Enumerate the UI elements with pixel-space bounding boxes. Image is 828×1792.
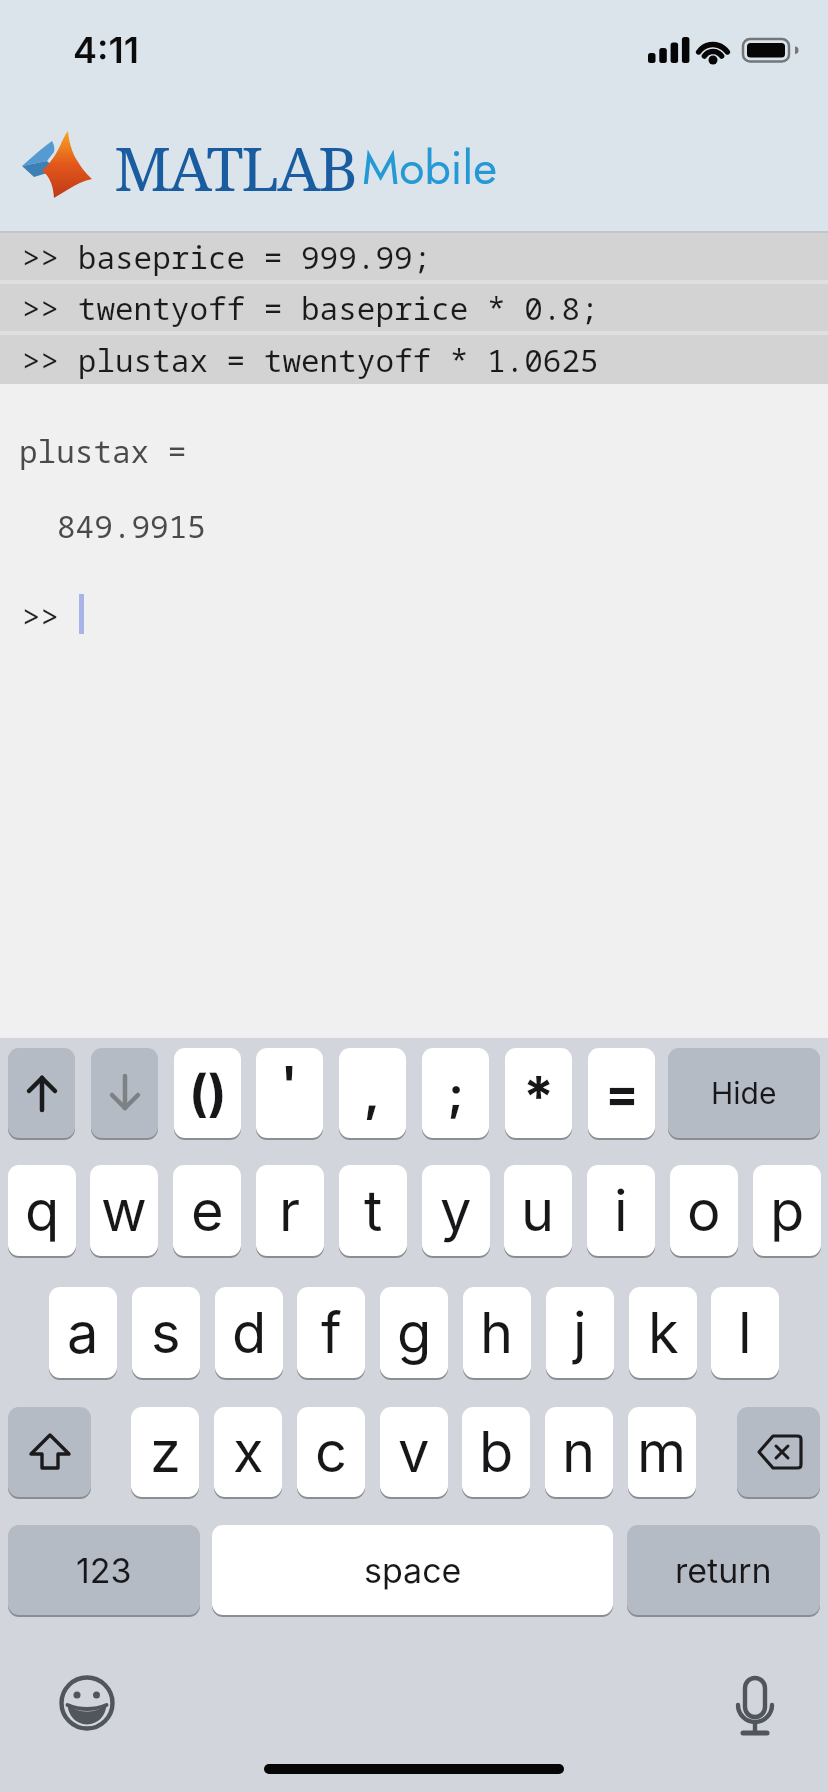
staticText: ; [448,1065,464,1121]
button[interactable]: v [380,1407,448,1497]
button[interactable]: f [297,1287,365,1378]
staticText: j [573,1299,587,1367]
button[interactable]: b [462,1407,530,1497]
staticText: n [562,1418,596,1486]
button[interactable]: Hide [668,1048,820,1138]
staticText: e [191,1177,224,1245]
staticText: g [397,1299,432,1367]
staticText: Mobile [362,135,497,201]
staticText: t [364,1177,383,1245]
button[interactable]: d [215,1287,283,1378]
staticText: k [648,1299,679,1367]
button[interactable]: w [90,1165,158,1256]
staticText: u [521,1177,555,1245]
staticText: b [479,1418,514,1486]
button[interactable]: q [8,1165,76,1256]
staticText: m [637,1418,687,1486]
staticText: s [151,1299,181,1367]
button[interactable]: i [587,1165,655,1256]
staticText: d [232,1299,267,1367]
button[interactable]: j [546,1287,614,1378]
button[interactable]: h [463,1287,531,1378]
button[interactable] [8,1407,91,1497]
button[interactable]: n [545,1407,613,1497]
button[interactable]: l [711,1287,779,1378]
button[interactable]: ; [422,1048,489,1138]
staticText: return [675,1550,772,1591]
button[interactable]: s [132,1287,200,1378]
button[interactable]: y [422,1165,490,1256]
staticText: = [605,1063,639,1123]
staticText: () [189,1063,227,1123]
staticText: 4:11 [73,28,139,72]
button[interactable]: () [174,1048,241,1138]
button[interactable]: m [628,1407,696,1497]
button[interactable]: a [49,1287,117,1378]
button[interactable]: ' [256,1048,323,1138]
button[interactable]: z [131,1407,199,1497]
staticText: ' [281,1054,298,1112]
button[interactable]: e [173,1165,241,1256]
button[interactable] [47,1663,127,1743]
staticText: space [364,1550,462,1591]
staticText: >> [22,595,60,637]
staticText: l [738,1299,752,1367]
button[interactable] [716,1668,792,1744]
staticText: f [321,1299,342,1367]
button[interactable]: p [753,1165,821,1256]
button[interactable]: t [339,1165,407,1256]
staticText: w [101,1177,147,1245]
staticText: q [25,1177,60,1245]
staticText: r [279,1177,301,1245]
button[interactable]: space [212,1525,613,1615]
staticText: plustax = [19,430,187,472]
button[interactable]: r [256,1165,324,1256]
staticText: h [480,1299,514,1367]
button[interactable] [91,1048,158,1138]
button[interactable]: o [670,1165,738,1256]
staticText: >> plustax = twentyoff * 1.0625 [22,339,599,381]
staticText: Hide [711,1075,777,1111]
button[interactable]: , [339,1048,406,1138]
button[interactable]: 123 [8,1525,200,1615]
staticText: o [687,1177,721,1245]
staticText: i [614,1177,628,1245]
button[interactable]: * [505,1048,572,1138]
button[interactable]: c [297,1407,365,1497]
staticText: p [770,1177,805,1245]
staticText: , [364,1064,381,1122]
staticText: x [233,1418,264,1486]
staticText: c [315,1418,347,1486]
staticText: 123 [76,1550,132,1591]
button[interactable]: k [629,1287,697,1378]
staticText: MATLAB [114,126,356,209]
staticText: 849.9915 [57,505,206,547]
button[interactable]: u [504,1165,572,1256]
staticText: >> twentyoff = baseprice * 0.8; [22,287,599,329]
button[interactable]: x [214,1407,282,1497]
button[interactable]: return [627,1525,820,1615]
staticText: z [150,1418,181,1486]
staticText: >> baseprice = 999.99; [22,236,432,278]
staticText: a [67,1299,99,1367]
staticText: v [398,1418,430,1486]
button[interactable] [8,1048,75,1138]
staticText: * [523,1063,555,1131]
staticText: y [440,1177,472,1245]
button[interactable]: g [380,1287,448,1378]
button[interactable]: = [588,1048,655,1138]
button[interactable] [737,1407,820,1497]
